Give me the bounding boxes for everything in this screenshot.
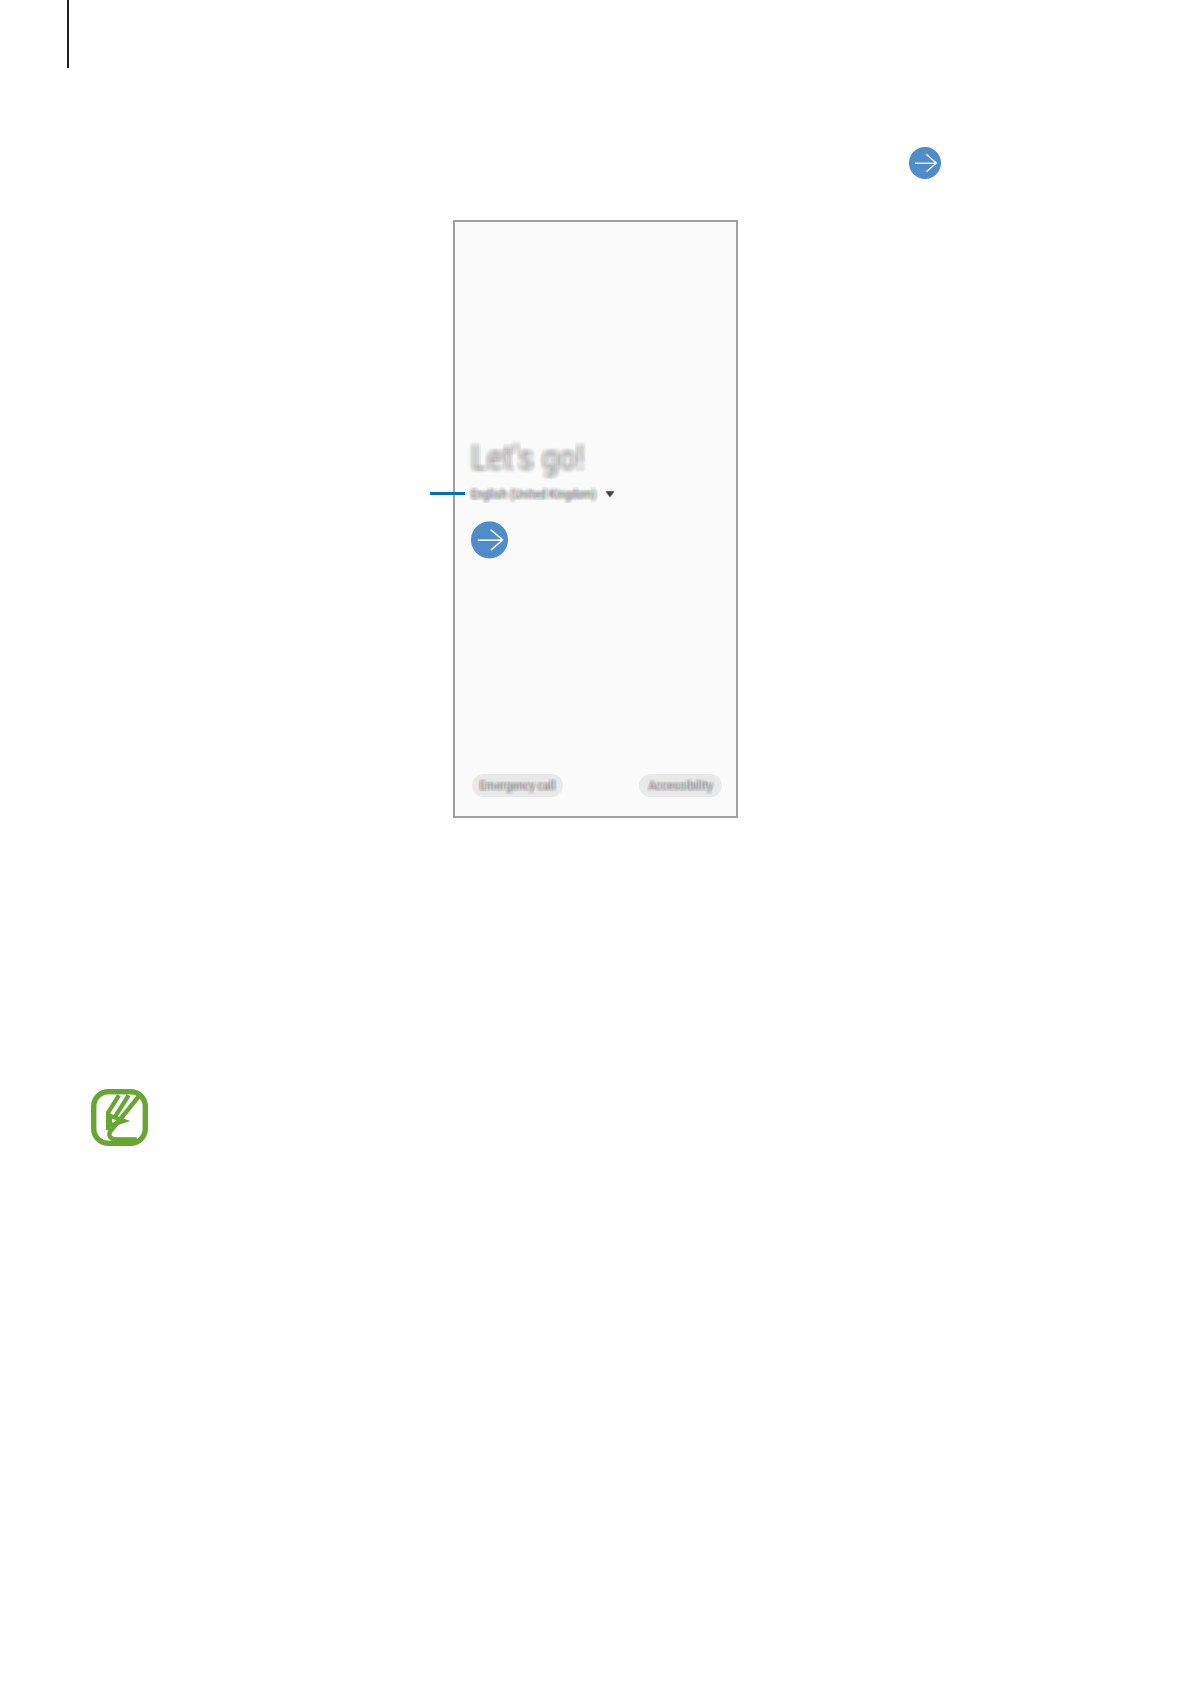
staticText: Emergency call <box>477 779 553 794</box>
staticText: English (United Kingdom) <box>472 486 597 501</box>
staticText: Let's go! <box>475 438 588 478</box>
staticText: Let's go! <box>472 438 585 478</box>
staticText: Let's go! <box>473 441 586 481</box>
staticText: English (United Kingdom) <box>469 486 594 500</box>
staticText: English (United Kingdom) <box>473 488 598 503</box>
staticText: English (United Kingdom) <box>472 486 597 500</box>
staticText: Emergency call <box>478 777 554 792</box>
staticText: Let's go! <box>470 441 583 481</box>
staticText: Accessibility <box>648 779 712 793</box>
staticText: English (United Kingdom) <box>469 488 594 502</box>
staticText: Accessibility <box>648 776 712 791</box>
staticText: Emergency call <box>480 778 556 793</box>
button[interactable]: Continue <box>909 147 941 179</box>
staticText: Let's go! <box>472 441 585 481</box>
staticText: Accessibility <box>650 779 714 794</box>
staticText: Emergency call <box>481 778 557 793</box>
staticText: English (United Kingdom) <box>470 486 595 500</box>
staticText: English (United Kingdom) <box>473 485 598 499</box>
staticText: Let's go! <box>475 441 588 481</box>
staticText: Accessibility <box>649 780 713 794</box>
button[interactable]: Continue <box>471 521 508 558</box>
staticText: English (United Kingdom) <box>473 486 598 500</box>
staticText: English (United Kingdom) <box>469 487 594 501</box>
staticText: Accessibility <box>648 776 712 791</box>
staticText: Accessibility <box>651 780 715 794</box>
staticText: Let's go! <box>467 438 580 478</box>
staticText: Accessibility <box>649 777 713 792</box>
staticText: Accessibility <box>650 776 714 791</box>
staticText: Let's go! <box>471 437 584 477</box>
staticText: Emergency call <box>478 779 554 793</box>
staticText: Accessibility <box>648 780 712 794</box>
staticText: Accessibility <box>648 777 712 792</box>
staticText: English (United Kingdom) <box>470 486 595 501</box>
staticText: Emergency call <box>482 778 558 793</box>
staticText: English (United Kingdom) <box>473 489 598 503</box>
staticText: Accessibility <box>646 778 710 793</box>
staticText: English (United Kingdom) <box>469 489 594 503</box>
staticText: Emergency call <box>479 779 555 794</box>
staticText: Let's go! <box>467 441 580 481</box>
staticText: English (United Kingdom) <box>472 489 597 503</box>
staticText: Let's go! <box>473 437 586 477</box>
staticText: English (United Kingdom) <box>470 489 595 503</box>
staticText: Emergency call <box>477 777 553 792</box>
staticText: Emergency call <box>481 776 557 791</box>
staticText: Let's go! <box>472 435 585 475</box>
staticText: Let's go! <box>471 435 584 475</box>
staticText: Emergency call <box>482 779 558 793</box>
staticText: Accessibility <box>648 777 712 792</box>
staticText: Emergency call <box>480 777 556 792</box>
staticText: Let's go! <box>473 435 586 475</box>
staticText: Emergency call <box>477 776 553 791</box>
staticText: Let's go! <box>472 439 585 479</box>
staticText: Accessibility <box>648 777 712 792</box>
staticText: Accessibility <box>646 777 710 792</box>
staticText: Emergency call <box>479 778 555 793</box>
staticText: Let's go! <box>475 439 588 479</box>
staticText: Emergency call <box>478 778 554 793</box>
staticText: Accessibility <box>650 779 714 793</box>
staticText: Emergency call <box>482 779 558 794</box>
staticText: Emergency call <box>481 779 557 793</box>
staticText: English (United Kingdom) <box>471 486 596 500</box>
staticText: Accessibility <box>650 780 714 794</box>
staticText: Let's go! <box>472 437 585 477</box>
button[interactable]: Accessibility <box>639 774 722 797</box>
staticText: Let's go! <box>473 438 586 478</box>
staticText: Accessibility <box>651 777 715 792</box>
staticText: Emergency call <box>482 777 558 792</box>
staticText: English (United Kingdom) <box>469 488 594 503</box>
staticText: Emergency call <box>478 776 554 791</box>
staticText: English (United Kingdom) <box>472 485 597 499</box>
staticText: Let's go! <box>468 439 581 479</box>
staticText: English (United Kingdom) <box>473 488 598 502</box>
staticText: Accessibility <box>650 777 714 792</box>
staticText: English (United Kingdom) <box>469 485 594 499</box>
staticText: English (United Kingdom) <box>469 485 594 499</box>
staticText: Emergency call <box>481 780 557 794</box>
staticText: Accessibility <box>651 778 715 793</box>
staticText: Let's go! <box>473 439 586 479</box>
staticText: Let's go! <box>468 438 581 478</box>
staticText: Accessibility <box>646 776 710 791</box>
staticText: Let's go! <box>468 437 581 477</box>
staticText: Let's go! <box>467 435 580 475</box>
staticText: Let's go! <box>470 439 583 479</box>
staticText: Accessibility <box>649 776 713 791</box>
staticText: English (United Kingdom) <box>469 488 594 502</box>
staticText: English (United Kingdom) <box>473 488 598 502</box>
staticText: Accessibility <box>648 779 712 793</box>
staticText: Accessibility <box>646 780 710 794</box>
staticText: Accessibility <box>647 778 711 793</box>
staticText: English (United Kingdom) <box>471 486 596 501</box>
button[interactable]: Emergency call <box>472 774 563 797</box>
staticText: English (United Kingdom) <box>473 488 598 503</box>
staticText: Emergency call <box>478 779 554 794</box>
staticText: Emergency call <box>479 779 555 793</box>
staticText: English (United Kingdom) <box>469 486 594 501</box>
staticText: Let's go! <box>471 440 584 480</box>
staticText: Accessibility <box>647 780 711 794</box>
staticText: Let's go! <box>467 439 580 479</box>
